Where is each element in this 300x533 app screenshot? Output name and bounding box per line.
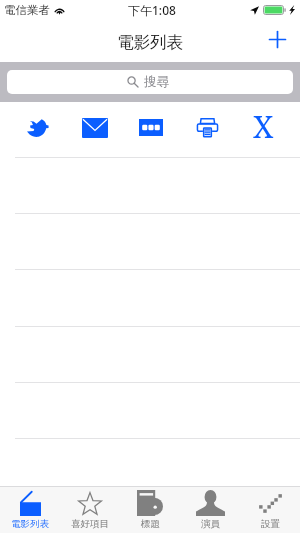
button[interactable]: [0, 157, 300, 213]
staticText: X: [253, 105, 274, 145]
button[interactable]: [0, 326, 300, 382]
staticText: 演員: [201, 518, 220, 530]
button[interactable]: Mail: [66, 102, 123, 157]
staticText: 電影列表: [117, 32, 183, 53]
button[interactable]: Search field: [7, 70, 293, 94]
button[interactable]: Message: [123, 102, 179, 157]
staticText: 搜尋: [144, 74, 169, 90]
button[interactable]: 設置: [240, 487, 300, 533]
staticText: 設置: [261, 518, 280, 530]
button[interactable]: [0, 382, 300, 438]
staticText: 電影列表: [11, 518, 49, 530]
button[interactable]: Tweet: [9, 102, 66, 157]
button[interactable]: Print: [179, 102, 235, 157]
button[interactable]: 演員: [180, 487, 240, 533]
button[interactable]: [0, 438, 300, 494]
button[interactable]: Add: [260, 22, 294, 56]
button[interactable]: More: [235, 102, 291, 157]
button[interactable]: 電影列表: [0, 487, 60, 533]
button[interactable]: [0, 269, 300, 325]
button[interactable]: [0, 213, 300, 269]
staticText: 標題: [141, 518, 160, 530]
staticText: 電信業者: [4, 3, 50, 17]
button[interactable]: 標題: [120, 487, 180, 533]
button[interactable]: 喜好項目: [60, 487, 120, 533]
staticText: 下午1:08: [128, 2, 176, 18]
staticText: 喜好項目: [71, 518, 109, 530]
